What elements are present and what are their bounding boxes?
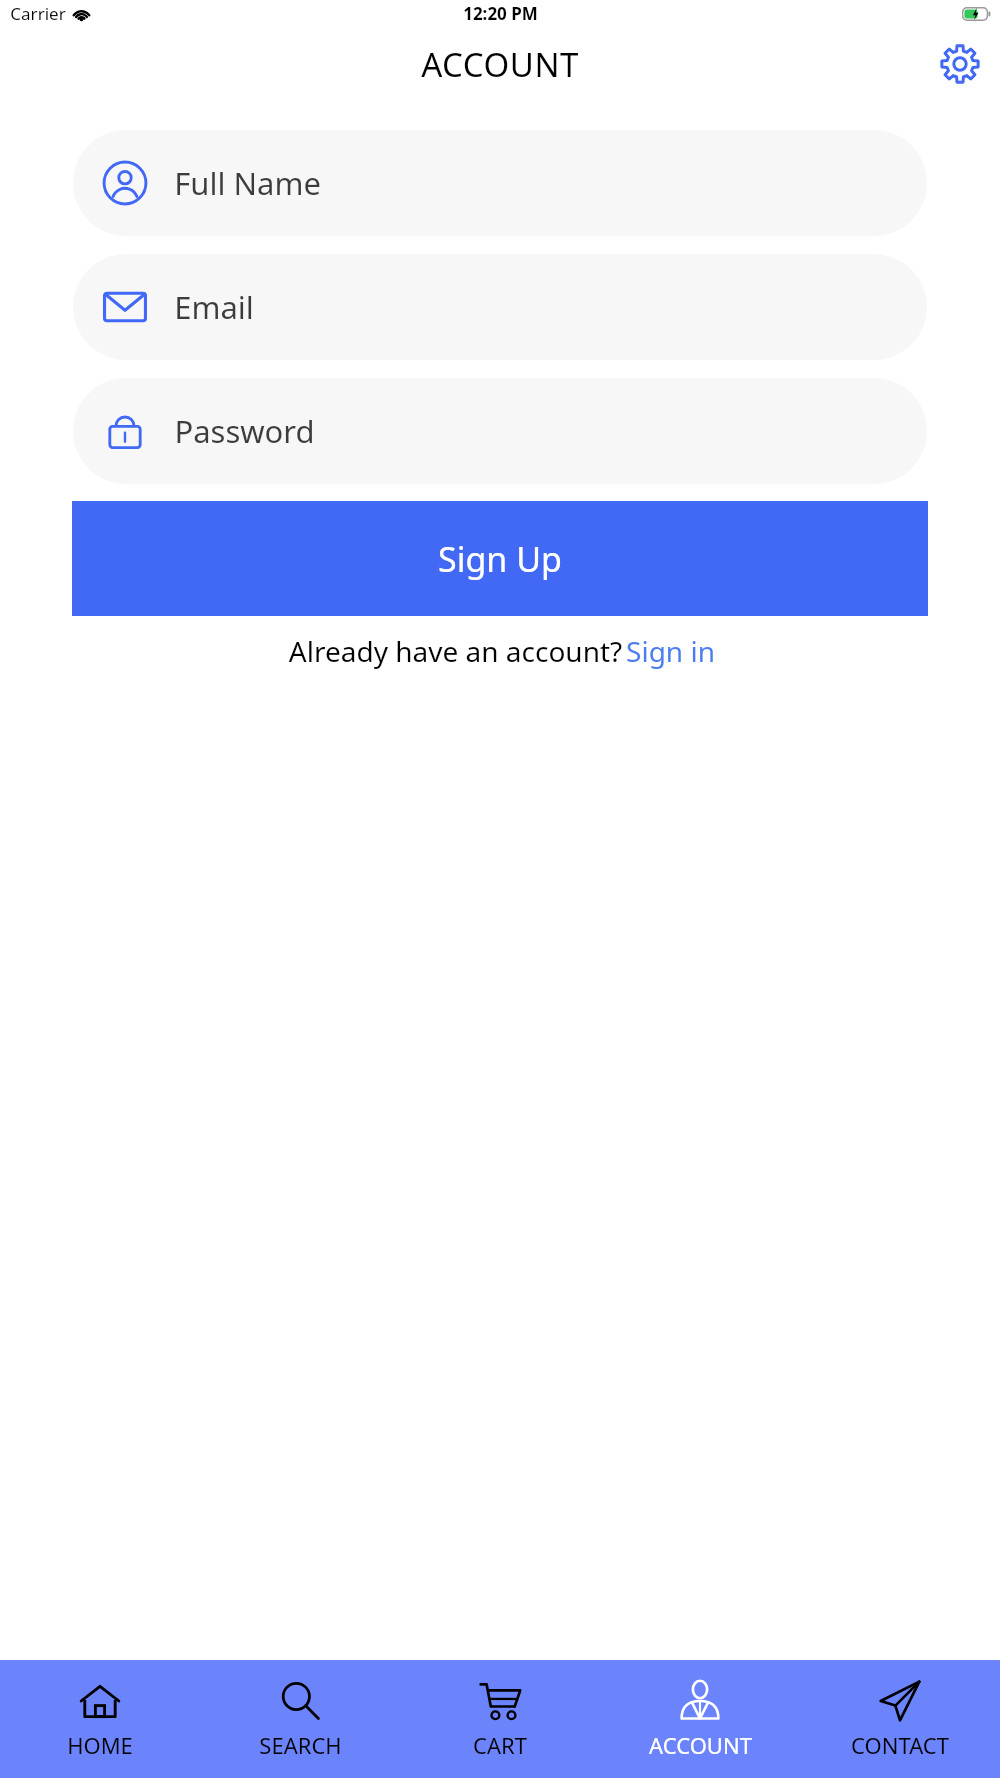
button[interactable]: Settings [934, 38, 986, 90]
staticText: HOME [67, 1730, 133, 1760]
staticText: Sign Up [438, 536, 562, 582]
button[interactable]: Sign in [626, 632, 715, 670]
button[interactable]: ACCOUNT [600, 1660, 800, 1778]
button[interactable]: Email [73, 254, 927, 360]
staticText: Sign in [626, 632, 715, 670]
staticText: ACCOUNT [649, 1730, 752, 1760]
button[interactable]: Password [73, 378, 927, 484]
button[interactable]: Full Name [73, 130, 927, 236]
button[interactable]: Sign Up [72, 501, 928, 616]
staticText: ACCOUNT [421, 42, 579, 87]
staticText: SEARCH [259, 1730, 342, 1760]
staticText: 12:20 PM [463, 2, 538, 25]
button[interactable]: HOME [0, 1660, 200, 1778]
button[interactable]: CART [400, 1660, 600, 1778]
staticText: Carrier [10, 2, 66, 25]
staticText: Password [174, 410, 315, 452]
staticText: Already have an account? [285, 632, 626, 670]
staticText: CART [473, 1730, 527, 1760]
staticText: Email [174, 286, 254, 328]
button[interactable]: CONTACT [800, 1660, 1000, 1778]
staticText: CONTACT [851, 1730, 949, 1760]
button[interactable]: SEARCH [200, 1660, 400, 1778]
staticText: Full Name [174, 162, 321, 204]
